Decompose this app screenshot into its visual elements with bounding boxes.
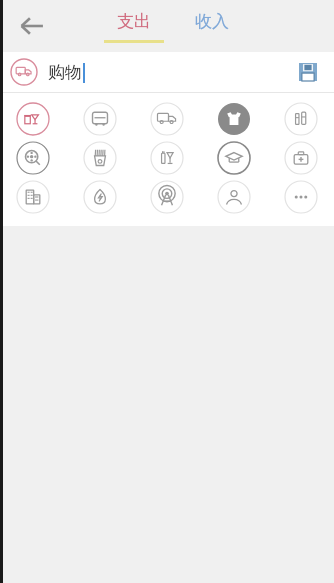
button[interactable]: cap <box>200 138 267 177</box>
button[interactable]: fries <box>66 138 133 177</box>
button[interactable]: shirt <box>200 99 267 138</box>
button[interactable]: wine <box>133 138 200 177</box>
button[interactable]: Save <box>292 56 324 88</box>
button[interactable]: medic <box>267 138 334 177</box>
button[interactable]: tower <box>133 177 200 216</box>
button[interactable]: building <box>0 177 66 216</box>
button[interactable]: Category <box>10 58 38 86</box>
button[interactable]: 收入 <box>189 9 235 34</box>
button[interactable]: food <box>0 99 66 138</box>
button[interactable]: person <box>200 177 267 216</box>
button[interactable]: film <box>0 138 66 177</box>
button[interactable]: cosmetic <box>267 99 334 138</box>
button[interactable]: more <box>267 177 334 216</box>
button[interactable]: Back <box>12 6 52 46</box>
staticText: 支出 <box>117 11 151 32</box>
button[interactable]: water <box>66 177 133 216</box>
button[interactable]: truck <box>133 99 200 138</box>
staticText: 购物 <box>48 62 82 83</box>
button[interactable]: bus <box>66 99 133 138</box>
staticText: 收入 <box>195 11 229 32</box>
button[interactable]: 支出 <box>111 9 157 34</box>
